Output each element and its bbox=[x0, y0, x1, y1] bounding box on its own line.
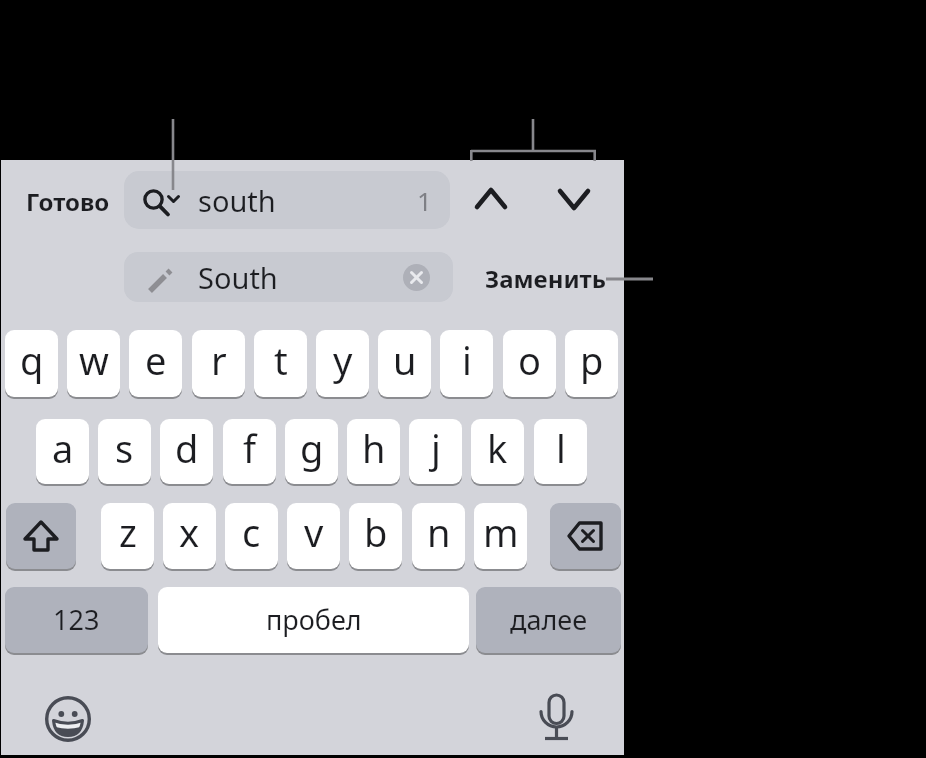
button[interactable]: u bbox=[378, 330, 431, 397]
button[interactable]: south bbox=[124, 171, 450, 229]
button[interactable] bbox=[403, 264, 430, 291]
staticText: z bbox=[119, 506, 137, 558]
button[interactable] bbox=[546, 176, 602, 224]
button[interactable]: o bbox=[503, 330, 556, 397]
button[interactable]: y bbox=[316, 330, 369, 397]
button[interactable]: i bbox=[440, 330, 493, 397]
staticText: q bbox=[20, 334, 44, 386]
button[interactable]: e bbox=[129, 330, 182, 397]
staticText: t bbox=[274, 334, 288, 386]
button[interactable]: h bbox=[347, 419, 400, 484]
button[interactable]: s bbox=[98, 419, 151, 484]
staticText: 1 bbox=[417, 183, 432, 218]
staticText: далее bbox=[510, 601, 588, 638]
button[interactable]: South bbox=[124, 252, 453, 302]
staticText: i bbox=[462, 334, 472, 386]
staticText: j bbox=[431, 422, 441, 474]
staticText: x bbox=[179, 506, 200, 558]
button[interactable]: j bbox=[409, 419, 462, 484]
button[interactable]: m bbox=[474, 503, 527, 569]
button[interactable]: z bbox=[101, 503, 154, 569]
staticText: v bbox=[304, 506, 324, 558]
staticText: d bbox=[175, 422, 199, 474]
staticText: c bbox=[242, 506, 261, 558]
staticText: s bbox=[115, 422, 134, 474]
staticText: Заменить bbox=[485, 262, 606, 295]
button[interactable]: 123 bbox=[5, 587, 148, 653]
button[interactable] bbox=[463, 176, 519, 224]
staticText: g bbox=[300, 422, 324, 474]
staticText: b bbox=[364, 506, 388, 558]
button[interactable]: пробел bbox=[158, 587, 469, 653]
staticText: f bbox=[243, 422, 257, 474]
button[interactable]: b bbox=[349, 503, 402, 569]
button[interactable]: a bbox=[36, 419, 89, 484]
button[interactable]: t bbox=[254, 330, 307, 397]
staticText: south bbox=[198, 181, 276, 220]
button[interactable]: r bbox=[192, 330, 245, 397]
staticText: e bbox=[145, 334, 167, 386]
button[interactable]: c bbox=[225, 503, 278, 569]
button[interactable]: l bbox=[534, 419, 587, 484]
staticText: Готово bbox=[26, 185, 110, 218]
staticText: l bbox=[556, 422, 566, 474]
staticText: n bbox=[427, 506, 451, 558]
staticText: пробел bbox=[266, 601, 362, 638]
staticText: r bbox=[211, 334, 227, 386]
button[interactable]: v bbox=[287, 503, 340, 569]
button[interactable] bbox=[6, 503, 76, 569]
button[interactable]: g bbox=[285, 419, 338, 484]
button[interactable] bbox=[40, 691, 96, 747]
button[interactable]: w bbox=[67, 330, 120, 397]
button[interactable]: далее bbox=[476, 587, 621, 653]
button[interactable]: f bbox=[223, 419, 276, 484]
button[interactable]: d bbox=[160, 419, 213, 484]
staticText: k bbox=[487, 422, 508, 474]
button[interactable]: p bbox=[565, 330, 618, 397]
staticText: y bbox=[333, 334, 353, 386]
staticText: South bbox=[198, 258, 278, 297]
button[interactable]: q bbox=[5, 330, 58, 397]
button[interactable] bbox=[530, 689, 582, 745]
staticText: m bbox=[483, 506, 519, 558]
staticText: o bbox=[518, 334, 541, 386]
button[interactable]: x bbox=[163, 503, 216, 569]
button[interactable]: Заменить bbox=[480, 260, 610, 296]
staticText: 123 bbox=[53, 601, 100, 638]
staticText: p bbox=[580, 334, 604, 386]
staticText: w bbox=[79, 334, 109, 386]
button[interactable] bbox=[550, 503, 621, 569]
button[interactable]: n bbox=[412, 503, 465, 569]
button[interactable]: k bbox=[471, 419, 524, 484]
button[interactable]: Готово bbox=[20, 183, 115, 219]
staticText: h bbox=[362, 422, 386, 474]
staticText: u bbox=[393, 334, 417, 386]
staticText: a bbox=[52, 422, 74, 474]
